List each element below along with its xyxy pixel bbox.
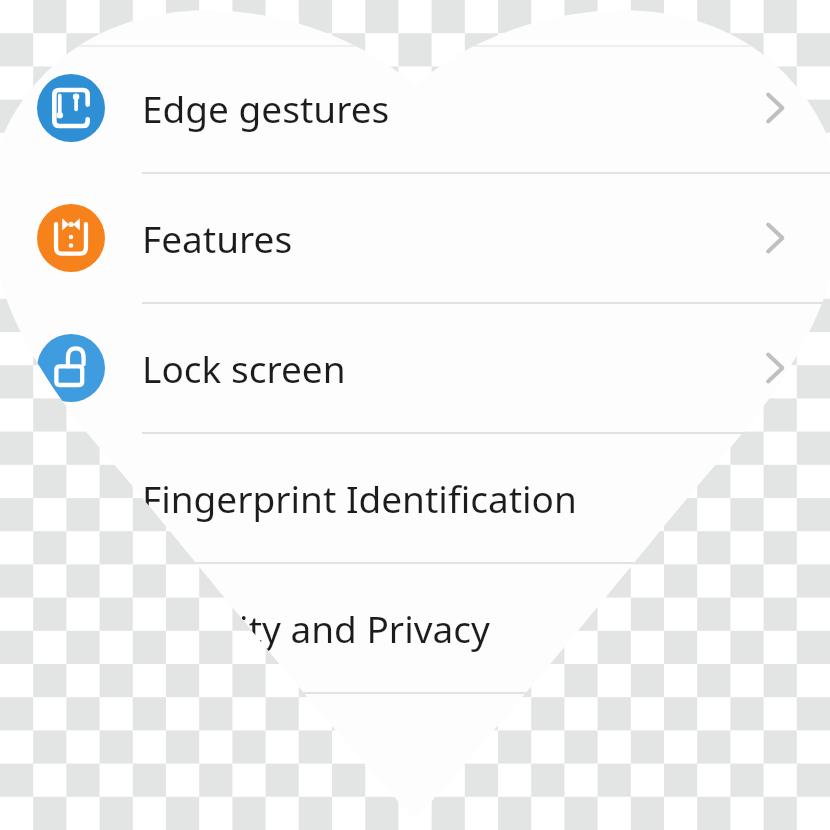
button[interactable]: Edge gestures — [0, 44, 830, 172]
staticText: Fingerprint Identification — [142, 473, 718, 523]
other: Open Edge gestures — [718, 44, 830, 172]
staticText: Lock screen — [142, 343, 718, 393]
other: Open Features — [718, 174, 830, 302]
button[interactable]: Fingerprint Identification — [0, 434, 830, 562]
staticText: Edge gestures — [142, 83, 718, 133]
other: Open Security and Privacy — [718, 564, 830, 692]
staticText: Features — [142, 213, 718, 263]
staticText: Security and Privacy — [142, 603, 718, 653]
button[interactable]: Features — [0, 174, 830, 302]
button[interactable]: Security and Privacy — [0, 564, 830, 692]
other: Open Fingerprint Identification — [718, 434, 830, 562]
button[interactable]: Lock screen — [0, 304, 830, 432]
other: Open Lock screen — [718, 304, 830, 432]
